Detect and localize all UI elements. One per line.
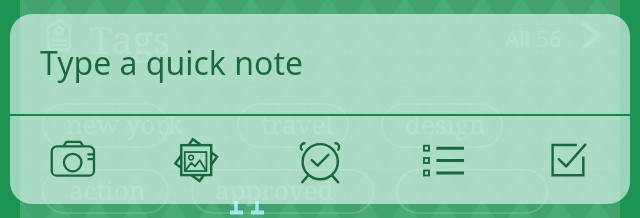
staticText: approved bbox=[215, 172, 334, 207]
staticText: design bbox=[405, 106, 486, 141]
staticText: new york bbox=[66, 106, 184, 141]
button[interactable]: Bulleted list bbox=[382, 116, 506, 204]
button[interactable]: Checklist bbox=[506, 116, 630, 204]
staticText: travel bbox=[261, 106, 334, 141]
button[interactable]: Set reminder bbox=[258, 116, 382, 204]
button[interactable]: Type a quick note bbox=[10, 14, 630, 114]
staticText: Tags bbox=[89, 13, 171, 65]
button[interactable]: Take photo bbox=[10, 116, 134, 204]
staticText: All 56 bbox=[505, 23, 562, 53]
button[interactable]: Add image bbox=[134, 116, 258, 204]
staticText: action bbox=[69, 172, 146, 207]
staticText: Type a quick note bbox=[40, 41, 304, 85]
